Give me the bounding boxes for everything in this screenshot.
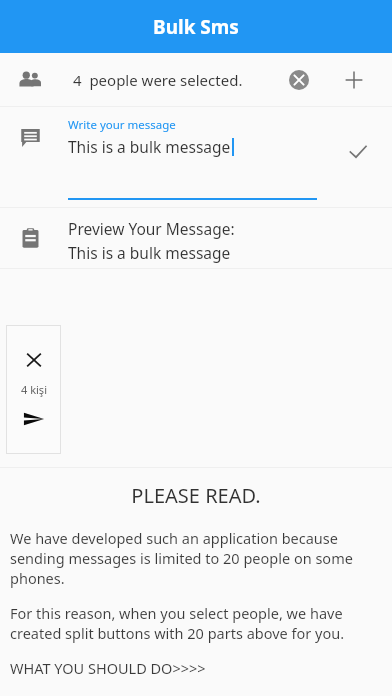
staticText: 4 people were selected. — [73, 70, 243, 90]
staticText: We have developed such an application be… — [10, 528, 382, 588]
button[interactable]: Add people — [335, 61, 373, 99]
staticText: This is a bulk message — [68, 136, 231, 157]
staticText: WHAT YOU SHOULD DO>>>> — [10, 658, 206, 678]
staticText: 4 kişi — [21, 382, 47, 397]
staticText: Preview Your Message: — [68, 218, 235, 239]
staticText: Write your message — [68, 117, 176, 133]
button[interactable]: Confirm message — [340, 134, 376, 170]
button[interactable]: Clear selection — [280, 61, 318, 99]
staticText: For this reason, when you select people,… — [10, 603, 382, 643]
button[interactable]: 4 kişi — [6, 325, 61, 454]
staticText: This is a bulk message — [68, 242, 231, 263]
staticText: PLEASE READ. — [0, 482, 392, 509]
staticText: Bulk Sms — [153, 14, 239, 40]
